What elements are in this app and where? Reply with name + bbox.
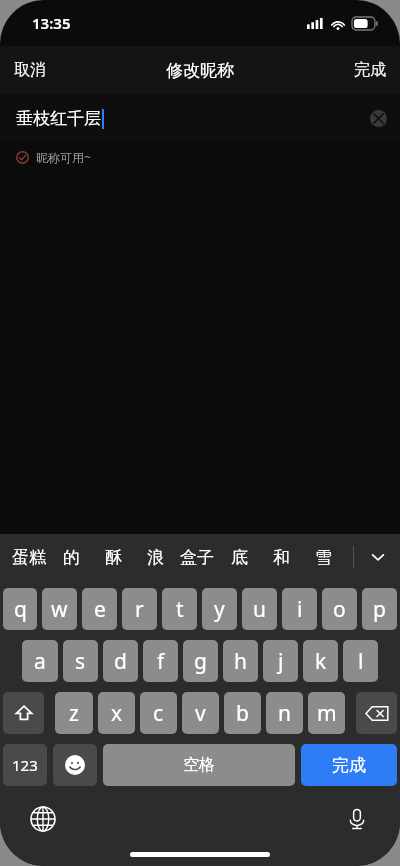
button[interactable]: b bbox=[224, 692, 261, 734]
button[interactable]: z bbox=[55, 692, 93, 734]
staticText: 底 bbox=[231, 547, 248, 568]
button[interactable]: t bbox=[162, 588, 197, 630]
staticText: 垂枝红千层 bbox=[16, 108, 101, 129]
button[interactable]: Shift bbox=[3, 692, 44, 734]
button[interactable]: u bbox=[242, 588, 277, 630]
button[interactable]: p bbox=[362, 588, 397, 630]
button[interactable]: 退格 bbox=[356, 692, 397, 734]
staticText: 修改昵称 bbox=[166, 60, 234, 81]
staticText: l bbox=[358, 647, 364, 676]
staticText: r bbox=[135, 595, 144, 624]
button[interactable]: o bbox=[322, 588, 357, 630]
button[interactable]: m bbox=[308, 692, 345, 734]
staticText: h bbox=[234, 647, 247, 676]
button[interactable]: 酥 bbox=[92, 534, 134, 580]
button[interactable]: r bbox=[122, 588, 157, 630]
staticText: t bbox=[176, 595, 184, 624]
staticText: 酥 bbox=[105, 547, 122, 568]
staticText: 取消 bbox=[14, 60, 46, 80]
button[interactable]: 切换键盘 bbox=[24, 800, 62, 838]
button[interactable]: i bbox=[282, 588, 317, 630]
staticText: o bbox=[333, 595, 346, 624]
button[interactable]: f bbox=[143, 640, 178, 682]
button[interactable]: s bbox=[63, 640, 98, 682]
staticText: 完成 bbox=[354, 60, 386, 80]
button[interactable]: y bbox=[202, 588, 237, 630]
staticText: y bbox=[214, 595, 225, 624]
staticText: p bbox=[373, 595, 386, 624]
staticText: k bbox=[315, 647, 327, 676]
staticText: x bbox=[111, 699, 123, 728]
staticText: 盒子 bbox=[180, 547, 214, 568]
staticText: 空格 bbox=[183, 755, 215, 775]
button[interactable]: 雪 bbox=[302, 534, 344, 580]
button[interactable]: l bbox=[343, 640, 378, 682]
button[interactable]: 的 bbox=[50, 534, 92, 580]
button[interactable]: g bbox=[183, 640, 218, 682]
button[interactable]: h bbox=[223, 640, 258, 682]
button[interactable]: a bbox=[22, 640, 58, 682]
button[interactable]: 表情 bbox=[53, 744, 97, 786]
button[interactable]: 123 bbox=[3, 744, 47, 786]
staticText: w bbox=[51, 595, 68, 624]
button[interactable]: 浪 bbox=[134, 534, 176, 580]
staticText: g bbox=[194, 647, 207, 676]
staticText: q bbox=[14, 595, 27, 624]
button[interactable]: 收起候选 bbox=[356, 534, 400, 580]
button[interactable]: k bbox=[303, 640, 338, 682]
staticText: e bbox=[94, 595, 106, 624]
staticText: i bbox=[297, 595, 303, 624]
staticText: 雪 bbox=[315, 547, 332, 568]
staticText: n bbox=[278, 699, 291, 728]
button[interactable]: j bbox=[263, 640, 298, 682]
button[interactable]: 取消 bbox=[0, 46, 60, 94]
button[interactable]: 和 bbox=[260, 534, 302, 580]
staticText: s bbox=[75, 647, 86, 676]
button[interactable]: 空格 bbox=[103, 744, 295, 786]
button[interactable]: 蛋糕 bbox=[8, 534, 50, 580]
staticText: b bbox=[236, 699, 249, 728]
staticText: 的 bbox=[63, 547, 80, 568]
button[interactable]: w bbox=[42, 588, 77, 630]
staticText: 昵称可用~ bbox=[36, 149, 91, 165]
button[interactable]: e bbox=[82, 588, 117, 630]
staticText: c bbox=[153, 699, 164, 728]
button[interactable]: 清除 bbox=[363, 103, 393, 133]
button[interactable]: c bbox=[140, 692, 177, 734]
button[interactable]: 完成 bbox=[301, 744, 397, 786]
button[interactable]: x bbox=[98, 692, 135, 734]
staticText: 和 bbox=[273, 547, 290, 568]
staticText: z bbox=[69, 699, 79, 728]
button[interactable]: d bbox=[103, 640, 138, 682]
button[interactable]: 盒子 bbox=[176, 534, 218, 580]
staticText: u bbox=[253, 595, 266, 624]
button[interactable]: 完成 bbox=[340, 46, 400, 94]
button[interactable]: n bbox=[266, 692, 303, 734]
staticText: f bbox=[157, 647, 165, 676]
button[interactable]: 底 bbox=[218, 534, 260, 580]
button[interactable]: q bbox=[3, 588, 37, 630]
staticText: 13:35 bbox=[32, 13, 71, 33]
staticText: 蛋糕 bbox=[12, 547, 46, 568]
staticText: 完成 bbox=[332, 755, 366, 776]
button[interactable]: v bbox=[182, 692, 219, 734]
staticText: 浪 bbox=[147, 547, 164, 568]
staticText: j bbox=[278, 647, 284, 676]
staticText: d bbox=[114, 647, 127, 676]
staticText: 123 bbox=[12, 755, 38, 775]
staticText: v bbox=[195, 699, 206, 728]
staticText: m bbox=[317, 699, 337, 728]
staticText: a bbox=[34, 647, 46, 676]
button[interactable]: 语音输入 bbox=[338, 800, 376, 838]
